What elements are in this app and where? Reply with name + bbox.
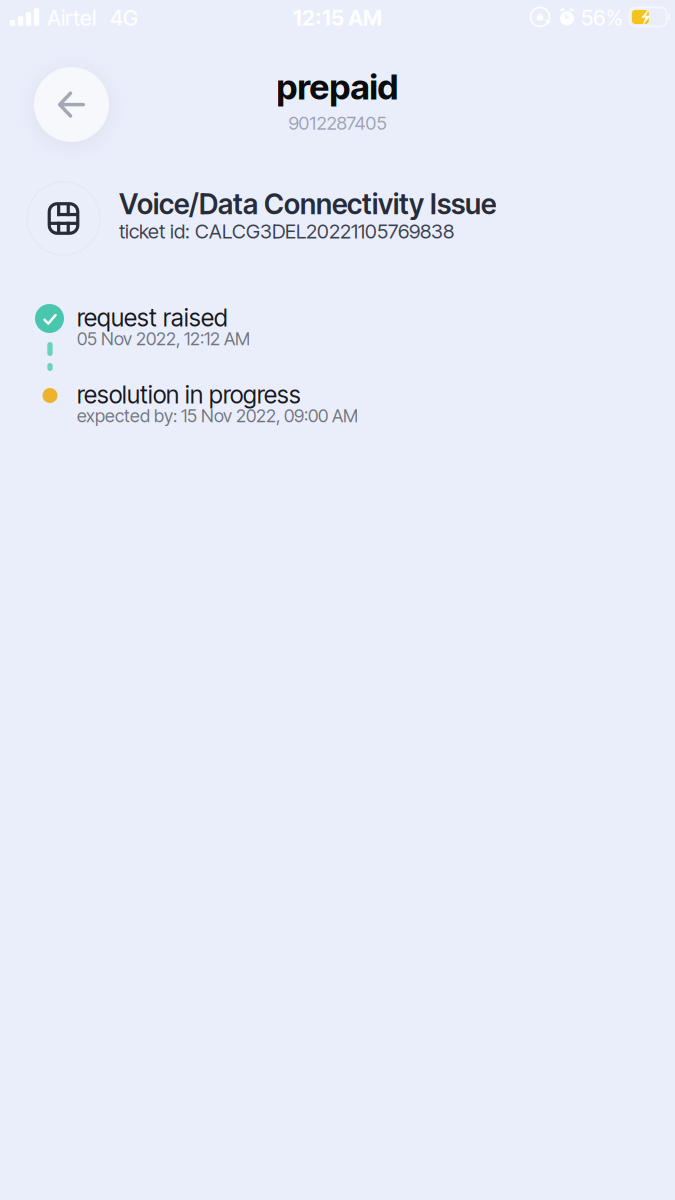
staticText: request raised [77,303,228,332]
staticText: prepaid [276,66,398,108]
button[interactable]: Back [34,67,109,142]
staticText: Airtel [47,5,96,31]
staticText: 12:15 AM [293,5,382,31]
staticText: 05 Nov 2022, 12:12 AM [77,328,250,350]
staticText: 4G [110,5,138,31]
staticText: ticket id: CALCG3DEL20221105769838 [119,219,454,243]
staticText: expected by: 15 Nov 2022, 09:00 AM [77,405,358,427]
staticText: 9012287405 [288,112,386,134]
staticText: resolution in progress [77,380,301,409]
staticText: Voice/Data Connectivity Issue [119,187,496,221]
staticText: 56% [581,5,623,31]
